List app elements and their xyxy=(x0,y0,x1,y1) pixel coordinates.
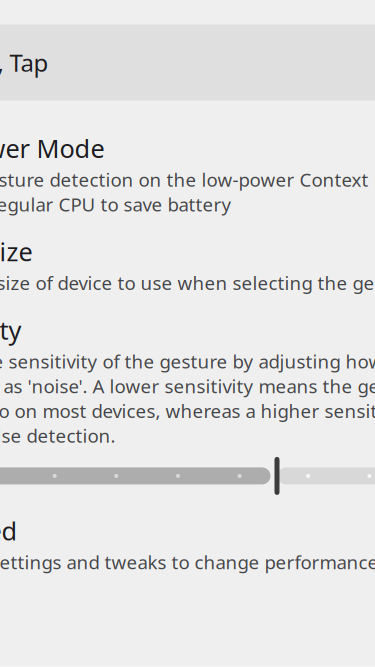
button[interactable]: Device Size xyxy=(0,226,375,304)
staticText: Run the gesture detection on the low-pow… xyxy=(0,167,375,217)
staticText: Device Size xyxy=(0,235,32,268)
staticText: Change the sensitivity of the gesture by… xyxy=(0,349,375,448)
button[interactable]: Enable Tap, Tap xyxy=(0,24,375,100)
staticText: Advanced xyxy=(0,514,17,547)
button[interactable]: Advanced xyxy=(0,505,375,583)
staticText: Sensitivity xyxy=(0,313,21,347)
staticText: Enable Tap, Tap xyxy=(0,46,48,78)
button[interactable]: Low Power Mode xyxy=(0,122,375,226)
staticText: Advanced settings and tweaks to change p… xyxy=(0,550,375,574)
staticText: Adjust the size of device to use when se… xyxy=(0,270,375,295)
staticText: Low Power Mode xyxy=(0,131,104,165)
